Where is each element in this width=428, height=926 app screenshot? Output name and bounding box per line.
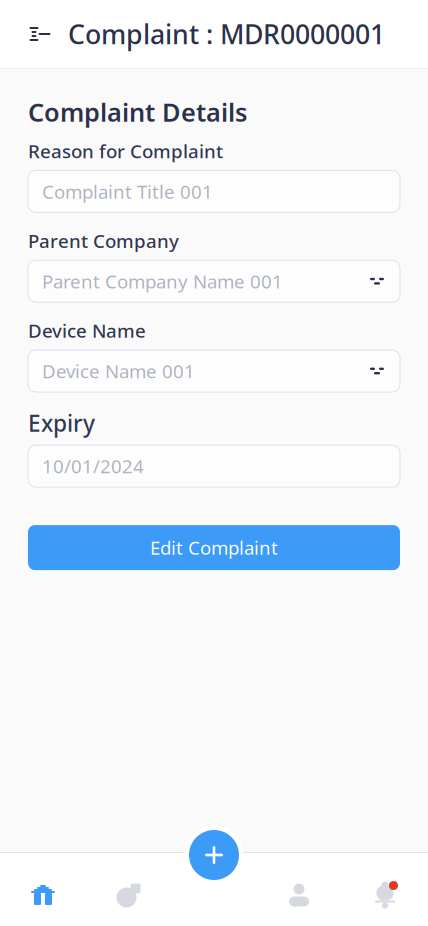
staticText: Parent Company: [28, 228, 179, 253]
staticText: Complaint : MDR0000001: [68, 16, 385, 52]
button[interactable]: 10/01/2024: [28, 445, 400, 487]
button[interactable]: Home: [0, 864, 86, 926]
staticText: Edit Complaint: [150, 535, 278, 560]
button[interactable]: Device Name 001: [28, 350, 400, 392]
button[interactable]: Back: [0, 6, 68, 62]
staticText: Reason for Complaint: [28, 139, 223, 163]
staticText: Complaint Title 001: [42, 179, 213, 204]
button[interactable]: Profile: [256, 864, 342, 926]
button[interactable]: Complaint Title 001: [28, 170, 400, 212]
button[interactable]: Parent Company Name 001: [28, 260, 400, 302]
staticText: Parent Company Name 001: [42, 269, 283, 294]
staticText: Expiry: [28, 408, 95, 438]
button[interactable]: Reports: [86, 864, 172, 926]
button[interactable]: Add: [185, 826, 243, 884]
staticText: Device Name: [28, 318, 146, 343]
button[interactable]: Notifications: [342, 864, 428, 926]
button[interactable]: Edit Complaint: [28, 525, 400, 570]
staticText: 10/01/2024: [42, 454, 144, 478]
staticText: Device Name 001: [42, 359, 195, 383]
staticText: Complaint Details: [28, 95, 247, 129]
